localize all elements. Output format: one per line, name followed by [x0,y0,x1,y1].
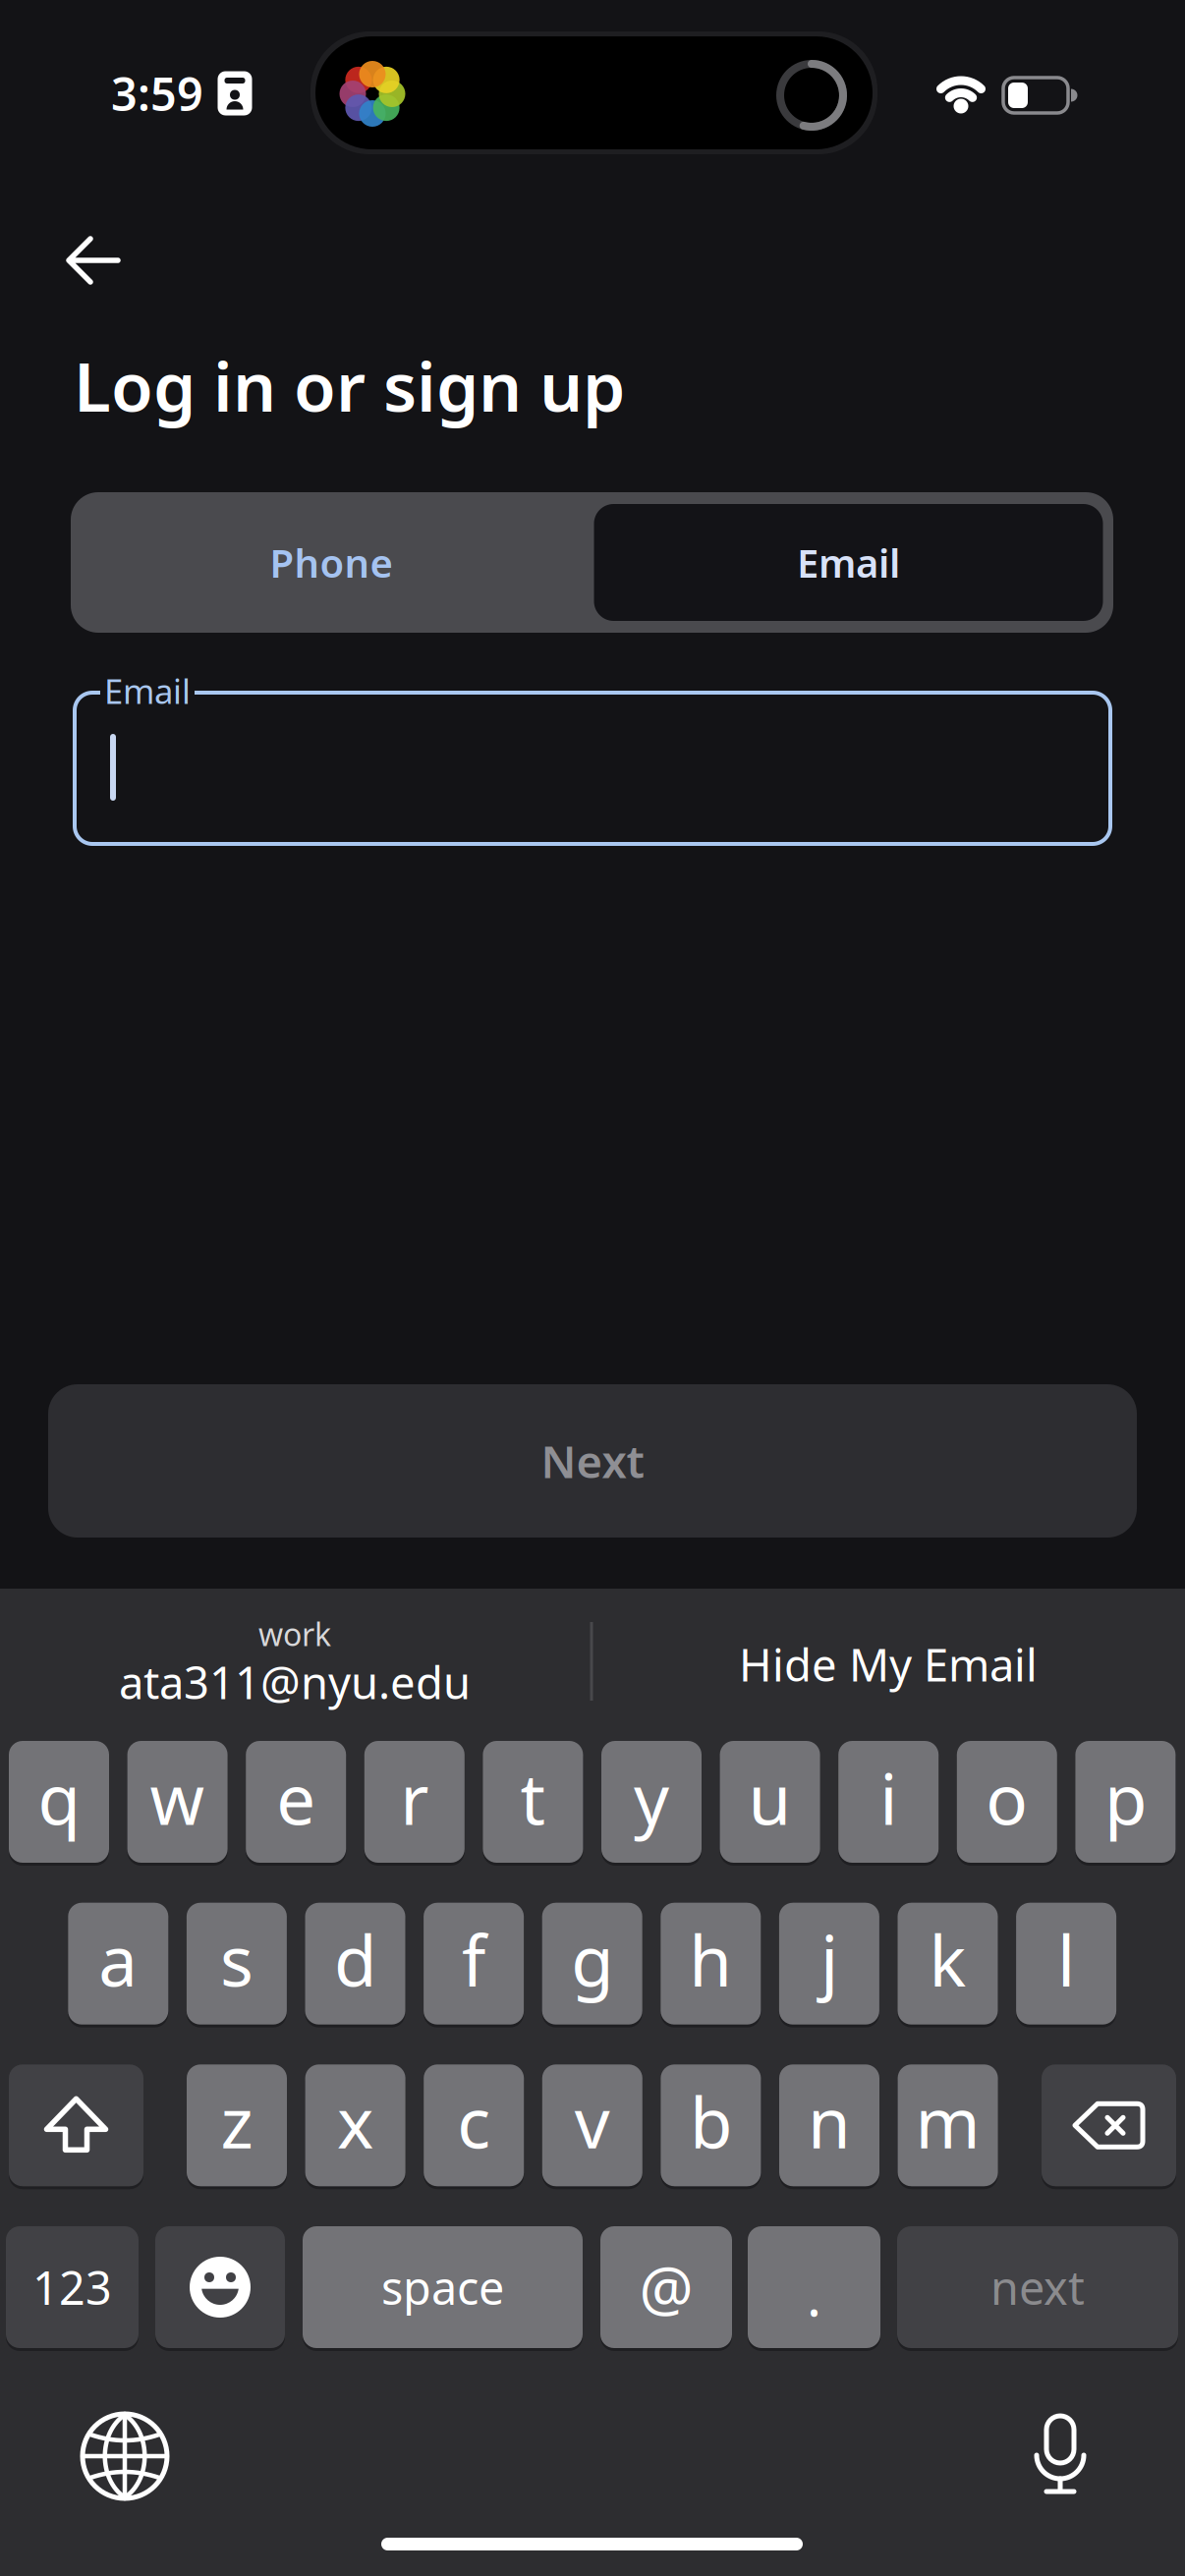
staticText: f [462,1914,485,2006]
button[interactable]: s [187,1903,287,2025]
button[interactable]: 123 [6,2226,139,2348]
button[interactable]: Next [48,1384,1137,1538]
staticText: Email [797,536,900,588]
button[interactable]: w [127,1741,228,1863]
button[interactable]: . [748,2226,880,2348]
staticText: u [748,1752,792,1844]
staticText: Email [104,668,191,713]
button[interactable]: f [424,1903,524,2025]
staticText: Hide My Email [739,1635,1038,1694]
button[interactable]: @ [600,2226,732,2348]
button[interactable]: t [483,1741,583,1863]
staticText: Phone [270,536,393,588]
staticText: w [150,1752,205,1844]
staticText: space [381,2257,504,2318]
staticText: next [990,2257,1085,2318]
button[interactable]: Email [75,683,1110,854]
staticText: r [400,1752,429,1844]
staticText: Log in or sign up [74,340,625,430]
button[interactable]: y [601,1741,702,1863]
staticText: c [457,2075,491,2167]
button[interactable]: e [246,1741,346,1863]
button[interactable]: k [898,1903,998,2025]
button[interactable]: Dictation [1006,2400,1114,2508]
staticText: m [915,2075,980,2167]
staticText: v [575,2075,610,2167]
button[interactable]: Next keyboard [71,2402,179,2510]
button[interactable]: Hide My Email [593,1589,1183,1740]
button[interactable]: q [9,1741,109,1863]
staticText: @ [639,2247,693,2327]
button[interactable]: Email [592,492,1113,633]
button[interactable]: o [957,1741,1057,1863]
button[interactable]: v [542,2064,642,2186]
staticText: a [99,1914,138,2006]
button[interactable]: h [661,1903,761,2025]
button[interactable]: i [838,1741,939,1863]
button[interactable]: r [364,1741,465,1863]
staticText: n [808,2075,851,2167]
button[interactable]: space [303,2226,583,2348]
staticText: 3:59 [111,63,203,124]
button[interactable]: c [424,2064,524,2186]
button[interactable]: g [542,1903,642,2025]
button[interactable]: m [898,2064,998,2186]
staticText: ata311@nyu.edu [119,1652,471,1712]
staticText: j [820,1914,838,2006]
staticText: e [276,1752,316,1844]
staticText: b [690,2075,732,2167]
staticText: d [334,1914,376,2006]
button[interactable]: u [720,1741,820,1863]
staticText: s [220,1914,253,2006]
staticText: l [1057,1914,1075,2006]
staticText: work [258,1613,331,1655]
button[interactable]: a [68,1903,168,2025]
button[interactable]: n [779,2064,879,2186]
staticText: o [986,1752,1028,1844]
button[interactable]: b [661,2064,761,2186]
button[interactable]: p [1075,1741,1176,1863]
staticText: . [807,2258,821,2332]
staticText: q [38,1752,80,1844]
button[interactable]: Delete [1042,2064,1176,2186]
button[interactable]: z [187,2064,287,2186]
staticText: Next [541,1431,644,1490]
staticText: k [929,1914,966,2006]
button[interactable]: l [1016,1903,1116,2025]
staticText: g [571,1914,613,2006]
staticText: 123 [32,2257,112,2318]
button[interactable]: d [305,1903,405,2025]
staticText: z [221,2075,253,2167]
staticText: y [634,1752,669,1844]
staticText: i [880,1752,897,1844]
button[interactable]: next [897,2226,1178,2348]
staticText: x [337,2075,373,2167]
staticText: t [520,1752,546,1844]
button[interactable]: Phone [71,492,592,633]
staticText: p [1104,1752,1147,1844]
button[interactable]: Back [49,216,138,305]
button[interactable]: Emoji [155,2226,285,2348]
staticText: h [689,1914,732,2006]
button[interactable]: j [779,1903,879,2025]
button[interactable]: work [0,1589,590,1740]
button[interactable]: Shift [9,2064,143,2186]
button[interactable]: x [305,2064,405,2186]
